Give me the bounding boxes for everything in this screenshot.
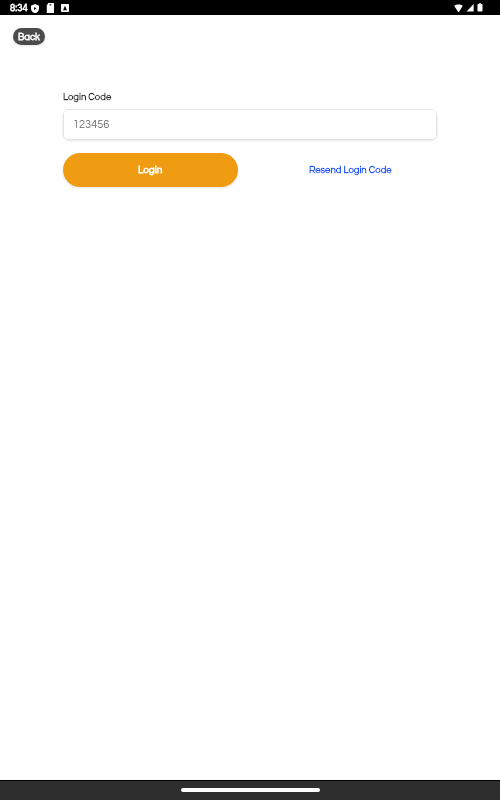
staticText: Back <box>18 32 40 42</box>
staticText: Resend Login Code <box>309 165 392 175</box>
button[interactable]: 123456 <box>63 109 437 140</box>
staticText: 8:34 <box>10 3 28 13</box>
button[interactable]: Login <box>63 153 238 187</box>
staticText: 123456 <box>73 119 110 130</box>
button[interactable]: Home <box>181 788 320 792</box>
button[interactable]: Back <box>13 28 45 45</box>
staticText: Login <box>138 165 163 175</box>
staticText: Login Code <box>63 92 112 102</box>
button[interactable]: Resend Login Code <box>264 153 437 187</box>
